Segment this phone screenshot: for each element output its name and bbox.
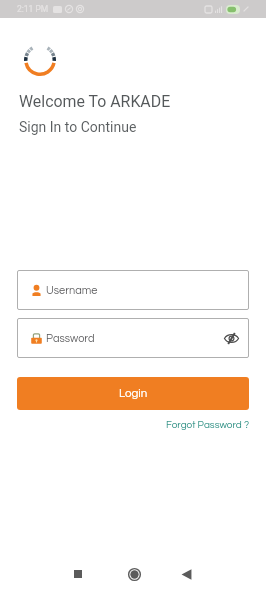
button[interactable]: Password bbox=[17, 318, 249, 358]
button[interactable]: Back bbox=[168, 556, 204, 592]
button[interactable]: Forgot Password ? bbox=[166, 420, 249, 430]
button[interactable]: Show password bbox=[222, 329, 240, 347]
button[interactable]: Recents bbox=[60, 556, 96, 592]
staticText: 2:11 PM bbox=[17, 4, 49, 14]
staticText: Sign In to Continue bbox=[19, 119, 137, 135]
button[interactable]: Home bbox=[116, 556, 152, 592]
button[interactable]: Login bbox=[17, 377, 249, 410]
staticText: Welcome To ARKADE bbox=[19, 92, 171, 111]
staticText: Username bbox=[46, 285, 98, 296]
button[interactable]: Username bbox=[17, 270, 249, 310]
staticText: Password bbox=[46, 333, 95, 344]
staticText: Login bbox=[119, 388, 148, 400]
